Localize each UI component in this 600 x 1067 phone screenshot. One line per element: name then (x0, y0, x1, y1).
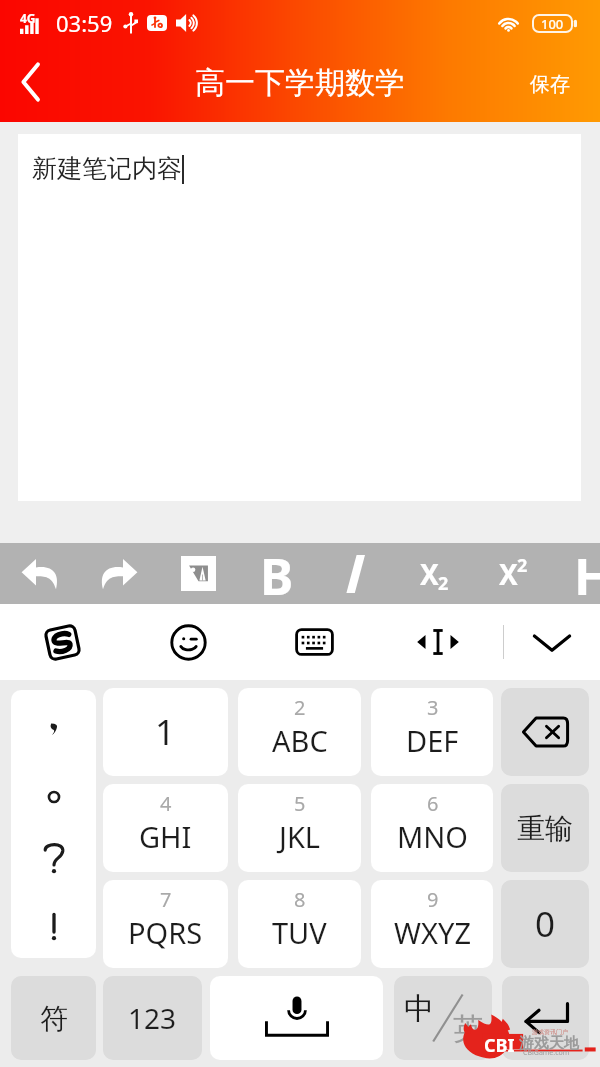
button[interactable]: Sogou menu (24, 612, 100, 672)
button[interactable]: 3 (371, 688, 493, 776)
button[interactable]: Punctuation (11, 690, 96, 958)
staticText: H (574, 542, 600, 603)
button[interactable]: 9 (371, 880, 493, 968)
button[interactable]: Hide keyboard (514, 612, 590, 672)
staticText: 03:59 (56, 8, 113, 38)
staticText: 英 (453, 1010, 483, 1048)
button[interactable]: 重输 (501, 784, 589, 872)
staticText: 2 (517, 553, 528, 578)
button[interactable]: Undo (0, 543, 80, 604)
staticText: ABC (272, 721, 328, 760)
staticText: CBiGame.com (523, 1048, 570, 1058)
staticText: 8 (294, 886, 306, 913)
staticText: 新建笔记内容 (32, 153, 182, 184)
staticText: 保存 (530, 72, 570, 97)
button[interactable]: 8 (238, 880, 361, 968)
staticText: 高一下学期数学 (195, 64, 405, 102)
staticText: PQRS (128, 913, 203, 952)
button[interactable]: 保存 (510, 49, 600, 119)
staticText: MNO (397, 817, 468, 856)
staticText: 100 (541, 15, 564, 33)
staticText: DEF (406, 721, 459, 760)
button[interactable]: Enter (502, 976, 589, 1060)
button[interactable]: Subscript (395, 543, 475, 604)
button[interactable]: Bold (237, 543, 317, 604)
staticText: 游戏天地 (519, 1034, 579, 1053)
button[interactable]: 7 (103, 880, 228, 968)
staticText: 6 (427, 790, 439, 817)
button[interactable]: Emoji (150, 612, 226, 672)
staticText: GHI (139, 817, 192, 856)
button[interactable]: 4 (103, 784, 228, 872)
staticText: 重输 (517, 811, 573, 846)
button[interactable]: 123 (103, 976, 202, 1060)
staticText: 符 (40, 1001, 68, 1036)
staticText: X (420, 555, 439, 593)
button[interactable]: Insert image (158, 543, 238, 604)
staticText: 1 (155, 708, 176, 756)
button[interactable]: Heading (553, 543, 600, 604)
button[interactable]: 5 (238, 784, 361, 872)
button[interactable]: Backspace (501, 688, 589, 776)
button[interactable]: Italic (316, 543, 396, 604)
button[interactable]: Keyboard layout (276, 612, 352, 672)
staticText: 123 (128, 999, 177, 1037)
staticText: TUV (272, 913, 327, 952)
staticText: 游戏资讯门户 (532, 1028, 568, 1036)
staticText: WXYZ (394, 913, 471, 952)
button[interactable]: 新建笔记内容 (18, 134, 581, 501)
staticText: 9 (427, 886, 439, 913)
staticText: B (260, 542, 294, 603)
button[interactable]: 1 (103, 688, 228, 776)
staticText: 2 (294, 694, 306, 721)
staticText: 7 (160, 886, 172, 913)
button[interactable]: 2 (238, 688, 361, 776)
staticText: JKL (279, 817, 321, 856)
button[interactable]: 0 (501, 880, 589, 968)
staticText: 3 (427, 694, 439, 721)
staticText: 5 (294, 790, 306, 817)
staticText: X (499, 555, 518, 593)
button[interactable]: Superscript (474, 543, 554, 604)
staticText: 4G (20, 10, 36, 26)
staticText: CBI (484, 1033, 515, 1058)
staticText: 2 (438, 571, 449, 596)
button[interactable]: Back (0, 49, 62, 119)
staticText: 4 (160, 790, 172, 817)
button[interactable]: 6 (371, 784, 493, 872)
button[interactable]: Switch Chinese English (394, 976, 492, 1060)
staticText: 中 (404, 990, 434, 1028)
button[interactable]: 符 (11, 976, 96, 1060)
button[interactable]: Space / voice input (210, 976, 383, 1060)
button[interactable]: Redo (79, 543, 159, 604)
staticText: 0 (535, 900, 556, 948)
button[interactable]: Move cursor (400, 612, 476, 672)
